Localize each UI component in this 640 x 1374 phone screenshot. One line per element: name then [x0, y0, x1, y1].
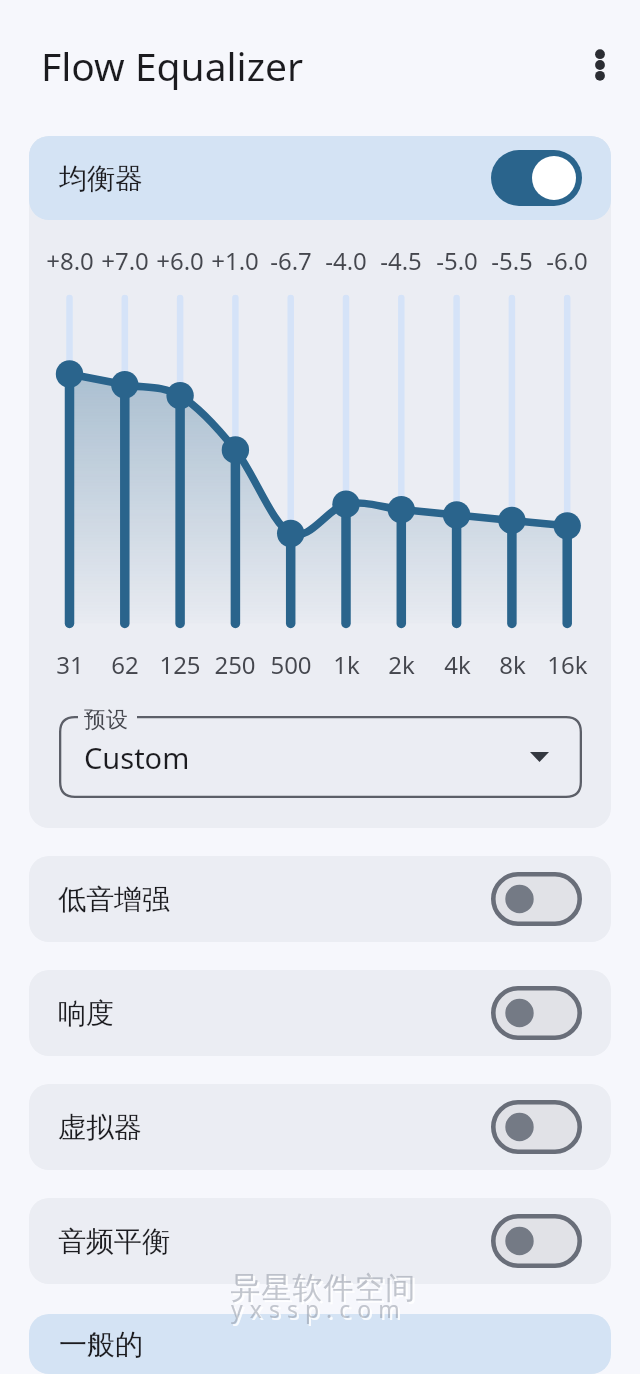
- staticText: +1.0: [211, 244, 259, 277]
- staticText: +6.0: [156, 244, 204, 277]
- staticText: 8k: [499, 648, 526, 681]
- staticText: 均衡器: [59, 161, 143, 196]
- staticText: -6.0: [546, 244, 588, 277]
- staticText: yxssp.com: [231, 1293, 407, 1324]
- staticText: 一般的: [59, 1327, 143, 1362]
- staticText: -6.7: [270, 244, 312, 277]
- staticText: -5.5: [491, 244, 533, 277]
- staticText: 预设: [84, 706, 128, 734]
- staticText: 虚拟器: [58, 1110, 142, 1145]
- staticText: +8.0: [46, 244, 94, 277]
- staticText: Custom: [84, 738, 190, 777]
- button[interactable]: More options: [564, 32, 636, 104]
- staticText: -4.0: [325, 244, 367, 277]
- staticText: 1k: [333, 648, 360, 681]
- button[interactable]: 预设: [59, 716, 582, 798]
- staticText: 31: [56, 648, 84, 681]
- staticText: 250: [214, 648, 256, 681]
- staticText: 2k: [388, 648, 415, 681]
- button[interactable]: 低音增强: [29, 856, 611, 942]
- staticText: 4k: [444, 648, 471, 681]
- button[interactable]: 虚拟器: [29, 1084, 611, 1170]
- button[interactable]: 均衡器: [29, 136, 611, 220]
- button[interactable]: 音频平衡: [29, 1198, 611, 1284]
- staticText: 500: [270, 648, 312, 681]
- staticText: 异星软件空间: [232, 1271, 418, 1309]
- staticText: yxssp.com: [233, 1295, 409, 1326]
- staticText: 异星软件空间: [230, 1269, 416, 1307]
- staticText: -4.5: [380, 244, 422, 277]
- staticText: 低音增强: [58, 882, 170, 917]
- staticText: 音频平衡: [58, 1224, 170, 1259]
- staticText: 响度: [58, 996, 114, 1031]
- staticText: -5.0: [436, 244, 478, 277]
- button[interactable]: 一般的: [29, 1314, 611, 1374]
- staticText: 16k: [547, 648, 588, 681]
- staticText: +7.0: [101, 244, 149, 277]
- staticText: 62: [111, 648, 139, 681]
- staticText: 125: [159, 648, 201, 681]
- staticText: Flow Equalizer: [41, 39, 304, 92]
- button[interactable]: 响度: [29, 970, 611, 1056]
